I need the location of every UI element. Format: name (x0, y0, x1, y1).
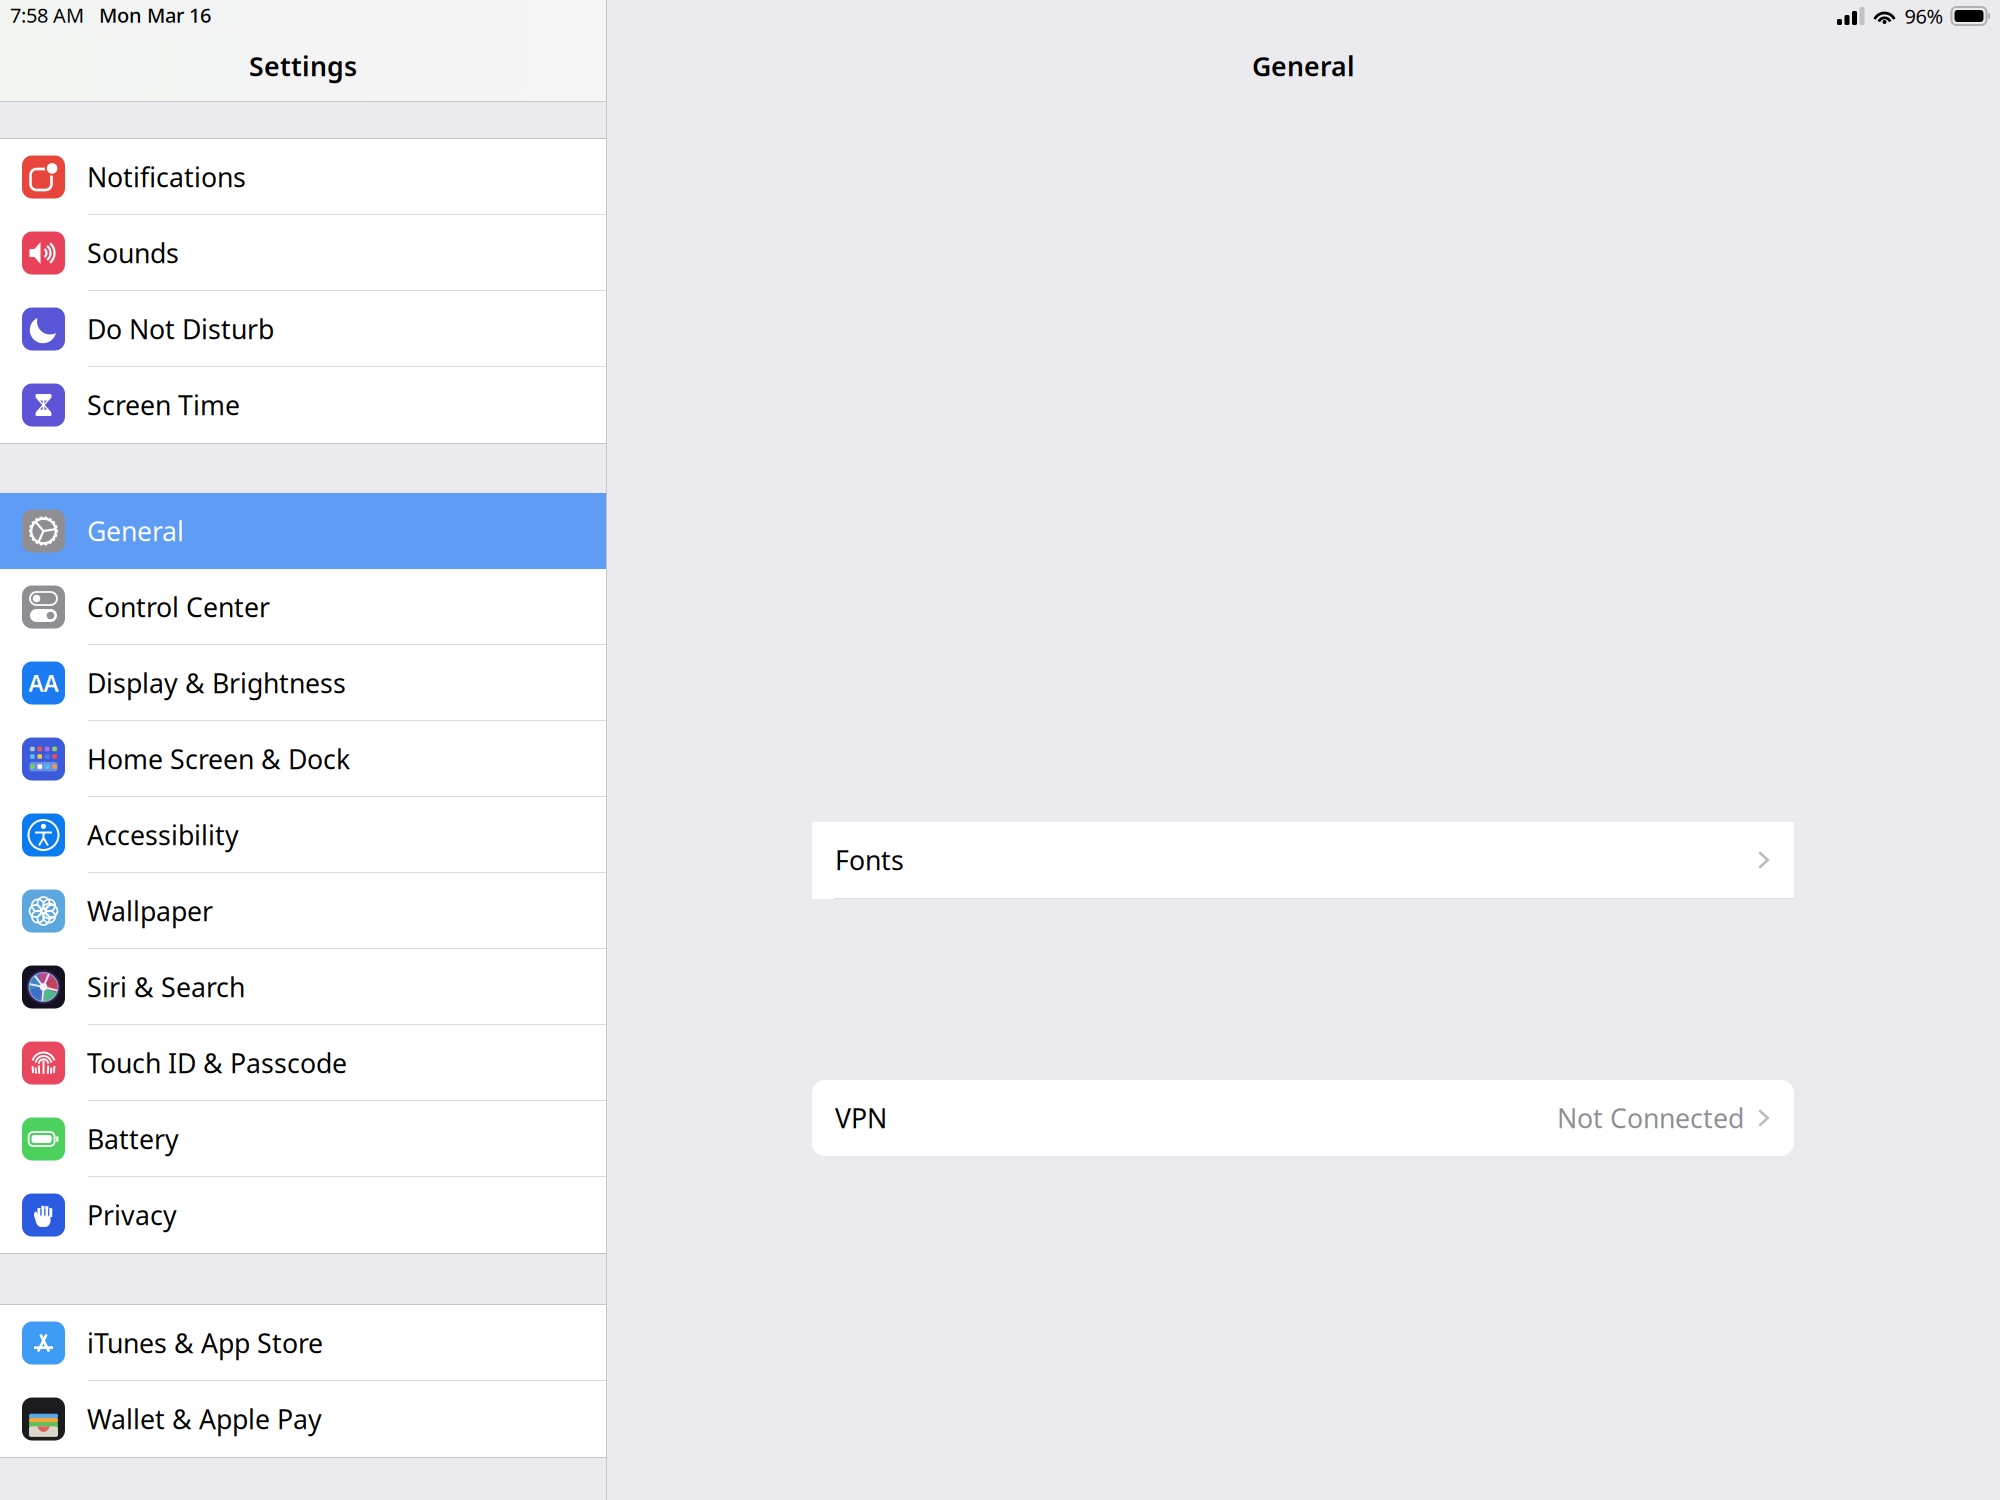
button[interactable]: Battery (0, 1101, 606, 1177)
button[interactable]: Wallpaper (0, 873, 606, 949)
button[interactable]: Touch ID & Passcode (0, 1025, 606, 1101)
staticText: Battery (87, 1121, 179, 1157)
staticText: Wallpaper (87, 893, 213, 929)
staticText: 7:58 AM (10, 2, 84, 28)
staticText: Screen Time (87, 387, 240, 423)
staticText: Fonts (835, 842, 904, 878)
button[interactable]: Accessibility (0, 797, 606, 873)
button[interactable]: Wallet & Apple Pay (0, 1381, 606, 1457)
staticText: Do Not Disturb (87, 311, 274, 347)
button[interactable]: Sounds (0, 215, 606, 291)
staticText: Notifications (87, 159, 246, 195)
button[interactable]: Do Not Disturb (0, 291, 606, 367)
button[interactable]: Control Center (0, 569, 606, 645)
staticText: Wallet & Apple Pay (87, 1401, 322, 1437)
staticText: AA (28, 668, 58, 698)
staticText: iTunes & App Store (87, 1325, 323, 1361)
staticText: General (1252, 48, 1355, 84)
staticText: Privacy (87, 1197, 177, 1233)
button[interactable]: General (0, 493, 606, 569)
staticText: 96% (1904, 3, 1943, 29)
staticText: Settings (249, 48, 357, 84)
staticText: Mon Mar 16 (99, 2, 211, 28)
staticText: Display & Brightness (87, 665, 346, 701)
button[interactable]: Fonts (812, 822, 1794, 899)
button[interactable]: Privacy (0, 1177, 606, 1253)
staticText: Sounds (87, 235, 179, 271)
staticText: Control Center (87, 589, 270, 625)
button[interactable]: Notifications (0, 139, 606, 215)
staticText: Not Connected (1557, 1100, 1744, 1136)
button[interactable]: Siri & Search (0, 949, 606, 1025)
staticText: Home Screen & Dock (87, 741, 350, 777)
staticText: Accessibility (87, 817, 239, 853)
staticText: Siri & Search (87, 969, 245, 1005)
button[interactable]: Home Screen & Dock (0, 721, 606, 797)
button[interactable]: Screen Time (0, 367, 606, 443)
button[interactable]: VPN (812, 1080, 1794, 1156)
staticText: VPN (835, 1100, 887, 1136)
button[interactable]: iTunes & App Store (0, 1305, 606, 1381)
button[interactable]: AA (0, 645, 606, 721)
staticText: Touch ID & Passcode (87, 1045, 347, 1081)
staticText: General (87, 513, 184, 549)
